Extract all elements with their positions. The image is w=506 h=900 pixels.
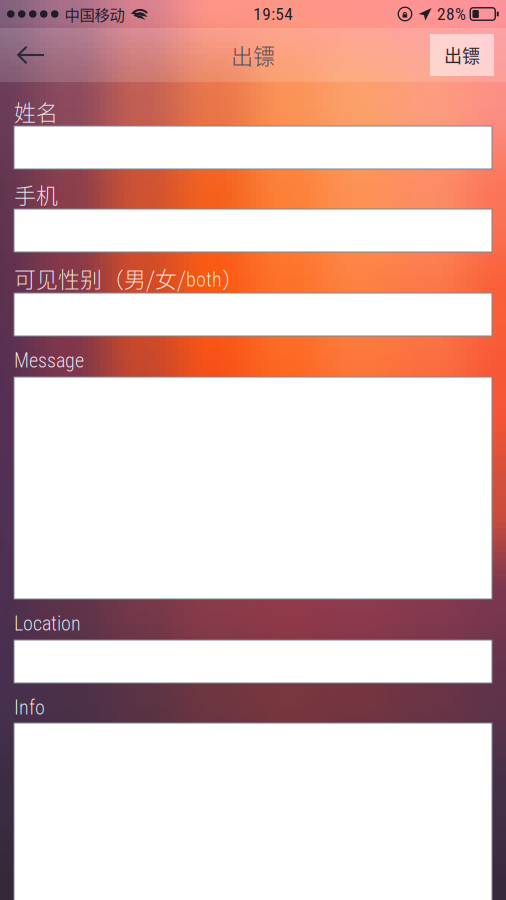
staticText: 中国移动: [64, 3, 124, 25]
button[interactable]: Back: [0, 31, 61, 78]
button[interactable]: Text field: [14, 293, 492, 336]
button[interactable]: Text field: [14, 640, 492, 683]
staticText: 出镖: [444, 42, 480, 68]
button[interactable]: Text field: [14, 377, 492, 599]
staticText: Info: [14, 696, 45, 719]
staticText: 28%: [437, 4, 466, 24]
staticText: Message: [14, 349, 84, 372]
button[interactable]: Text field: [14, 209, 492, 252]
button[interactable]: Text field: [14, 723, 492, 900]
staticText: Location: [14, 612, 81, 635]
staticText: 手机: [14, 178, 58, 210]
staticText: 可见性别（男/女/both）: [14, 262, 244, 293]
button[interactable]: 出镖: [430, 34, 494, 76]
staticText: 19:54: [253, 4, 293, 24]
staticText: 姓名: [14, 95, 58, 127]
staticText: 出镖: [231, 39, 275, 71]
button[interactable]: Text field: [14, 126, 492, 169]
